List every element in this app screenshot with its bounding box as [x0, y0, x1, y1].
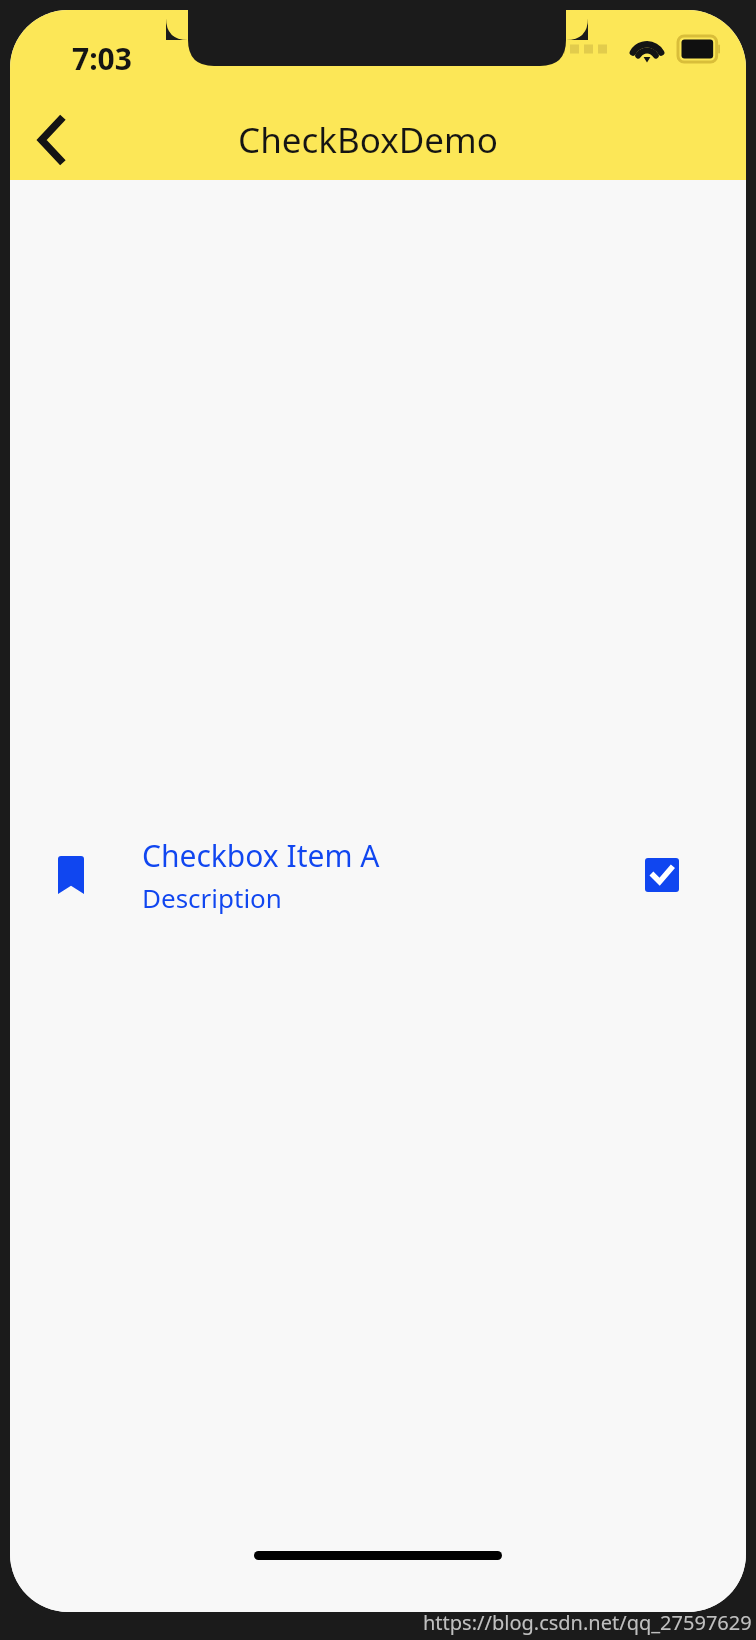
staticText: 7:03: [72, 38, 132, 79]
staticText: Checkbox Item A: [142, 835, 380, 876]
staticText: CheckBoxDemo: [238, 116, 498, 164]
staticText: https://blog.csdn.net/qq_27597629: [423, 1609, 752, 1636]
button[interactable]: Checkbox, checked: [638, 851, 686, 899]
staticText: Description: [142, 880, 282, 915]
button[interactable]: Back: [22, 110, 82, 170]
button[interactable]: Checkbox Item A: [10, 820, 746, 930]
